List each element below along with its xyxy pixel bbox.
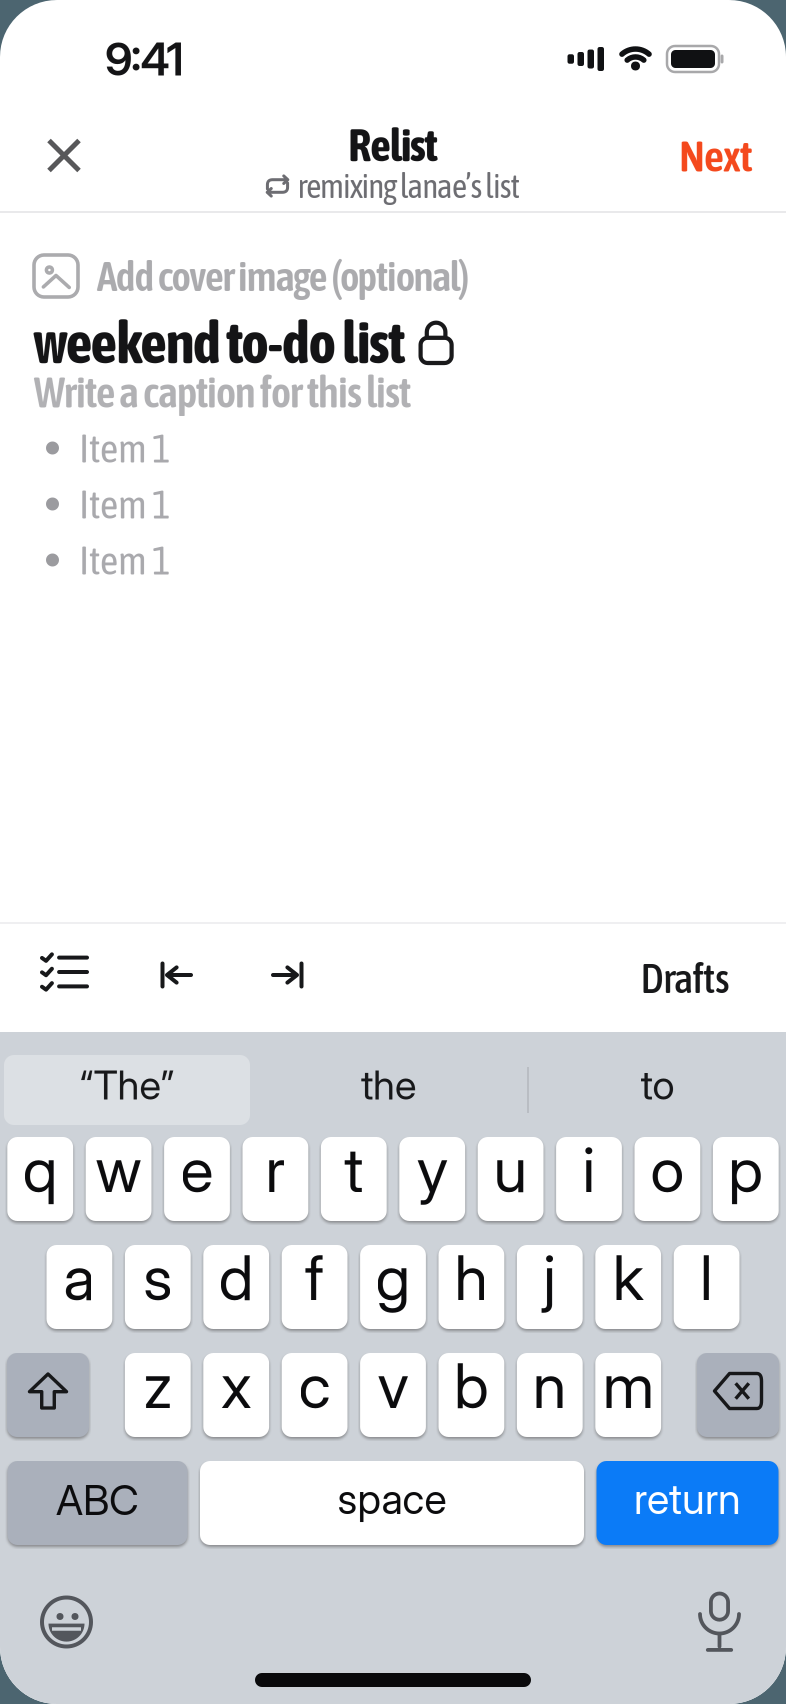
staticText: i: [582, 1134, 595, 1206]
staticText: u: [494, 1134, 528, 1206]
staticText: d: [219, 1242, 254, 1314]
staticText: Drafts: [640, 954, 730, 1002]
button[interactable]: o: [634, 1137, 700, 1221]
button[interactable]: d: [203, 1245, 269, 1329]
staticText: Relist: [348, 119, 438, 171]
staticText: s: [143, 1242, 172, 1314]
button[interactable]: [0, 140, 99, 170]
button[interactable]: [7, 1353, 89, 1437]
button[interactable]: x: [203, 1353, 269, 1437]
button[interactable]: Drafts: [640, 954, 786, 1002]
staticText: Next: [679, 130, 753, 181]
button[interactable]: [0, 1595, 93, 1648]
staticText: l: [700, 1242, 713, 1314]
button[interactable]: space: [200, 1461, 584, 1545]
staticText: n: [533, 1350, 567, 1422]
staticText: Item 1: [79, 481, 171, 527]
button[interactable]: “The”: [4, 1055, 250, 1125]
staticText: “The”: [79, 1061, 174, 1109]
button[interactable]: q: [7, 1137, 73, 1221]
staticText: Item 1: [79, 425, 171, 471]
button[interactable]: a: [46, 1245, 112, 1329]
staticText: y: [417, 1134, 448, 1206]
staticText: w: [96, 1134, 142, 1206]
button[interactable]: the: [250, 1055, 527, 1125]
staticText: to: [640, 1061, 674, 1109]
staticText: r: [265, 1134, 285, 1206]
staticText: t: [344, 1134, 363, 1206]
staticText: 9:41: [105, 32, 183, 86]
button[interactable]: m: [595, 1353, 661, 1437]
staticText: the: [361, 1061, 416, 1109]
button[interactable]: r: [242, 1137, 308, 1221]
staticText: Add cover image (optional): [97, 252, 469, 300]
button[interactable]: [87, 966, 191, 989]
staticText: Write a caption for this list: [34, 368, 411, 416]
button[interactable]: i: [556, 1137, 622, 1221]
staticText: remixing lanae’s list: [297, 167, 520, 205]
button[interactable]: b: [438, 1353, 504, 1437]
button[interactable]: v: [360, 1353, 426, 1437]
staticText: q: [23, 1134, 58, 1206]
button[interactable]: h: [438, 1245, 504, 1329]
button[interactable]: f: [282, 1245, 347, 1329]
button[interactable]: [700, 1593, 786, 1650]
staticText: space: [337, 1475, 446, 1523]
button[interactable]: Relist: [348, 123, 438, 167]
button[interactable]: n: [517, 1353, 583, 1437]
button[interactable]: s: [125, 1245, 191, 1329]
staticText: e: [180, 1134, 213, 1206]
staticText: c: [299, 1350, 331, 1422]
staticText: return: [634, 1475, 741, 1523]
staticText: a: [63, 1242, 95, 1314]
staticText: ABC: [56, 1476, 139, 1524]
button[interactable]: z: [125, 1353, 191, 1437]
staticText: b: [454, 1350, 489, 1422]
button[interactable]: [697, 1353, 779, 1437]
button[interactable]: w: [86, 1137, 151, 1221]
button[interactable]: [191, 966, 303, 989]
staticText: g: [375, 1242, 410, 1314]
staticText: p: [728, 1134, 763, 1206]
staticText: k: [613, 1242, 644, 1314]
button[interactable]: j: [517, 1245, 583, 1329]
button[interactable]: e: [164, 1137, 230, 1221]
staticText: v: [377, 1350, 408, 1422]
button[interactable]: Add cover image (optional): [0, 254, 469, 298]
button[interactable]: Next: [659, 130, 786, 181]
staticText: x: [221, 1350, 252, 1422]
button[interactable]: t: [321, 1137, 387, 1221]
staticText: z: [143, 1350, 172, 1422]
button[interactable]: l: [674, 1245, 739, 1329]
button[interactable]: ABC: [7, 1461, 187, 1545]
button[interactable]: k: [595, 1245, 661, 1329]
button[interactable]: y: [399, 1137, 465, 1221]
staticText: j: [543, 1242, 556, 1314]
staticText: h: [454, 1242, 488, 1314]
staticText: Item 1: [79, 537, 171, 583]
button[interactable]: to: [529, 1055, 786, 1125]
button[interactable]: u: [478, 1137, 543, 1221]
button[interactable]: g: [360, 1245, 426, 1329]
button[interactable]: p: [713, 1137, 779, 1221]
staticText: o: [650, 1134, 684, 1206]
button[interactable]: return: [596, 1461, 778, 1545]
staticText: f: [305, 1242, 324, 1314]
button[interactable]: [0, 960, 87, 996]
staticText: m: [603, 1350, 654, 1422]
staticText: weekend to-do list: [33, 308, 406, 376]
button[interactable]: c: [282, 1353, 347, 1437]
